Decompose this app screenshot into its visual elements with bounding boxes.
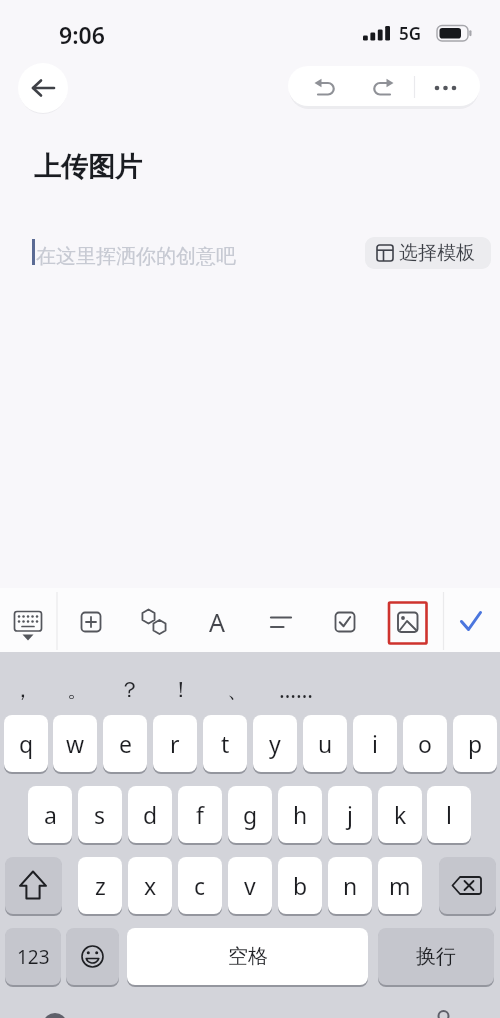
- button[interactable]: g: [228, 786, 272, 843]
- button[interactable]: n: [328, 857, 372, 914]
- button[interactable]: v: [228, 857, 272, 914]
- staticText: f: [196, 799, 204, 830]
- button[interactable]: c: [178, 857, 222, 914]
- staticText: ？: [119, 676, 141, 703]
- staticText: v: [244, 870, 256, 901]
- staticText: m: [389, 870, 411, 901]
- button[interactable]: j: [328, 786, 372, 843]
- button[interactable]: k: [378, 786, 422, 843]
- button[interactable]: [5, 857, 62, 914]
- staticText: ，: [12, 676, 34, 703]
- button[interactable]: t: [203, 715, 247, 772]
- button[interactable]: y: [253, 715, 297, 772]
- staticText: 5G: [399, 22, 422, 45]
- button[interactable]: [66, 928, 119, 985]
- button[interactable]: z: [78, 857, 122, 914]
- button[interactable]: [128, 596, 180, 646]
- button[interactable]: h: [278, 786, 322, 843]
- button[interactable]: b: [278, 857, 322, 914]
- staticText: 选择模板: [399, 241, 475, 265]
- staticText: ！: [170, 676, 192, 703]
- button[interactable]: 。: [51, 664, 105, 714]
- staticText: b: [293, 870, 308, 901]
- button[interactable]: [445, 596, 497, 646]
- button[interactable]: f: [178, 786, 222, 843]
- staticText: d: [143, 799, 158, 830]
- button[interactable]: [320, 596, 372, 646]
- staticText: 在这里挥洒你的创意吧: [36, 244, 236, 269]
- button[interactable]: [439, 857, 496, 914]
- staticText: t: [221, 728, 230, 759]
- staticText: j: [347, 799, 353, 830]
- button[interactable]: q: [4, 715, 48, 772]
- staticText: n: [343, 870, 358, 901]
- staticText: 、: [227, 676, 249, 703]
- button[interactable]: 选择模板: [365, 237, 491, 269]
- staticText: 。: [67, 676, 89, 703]
- button[interactable]: d: [128, 786, 172, 843]
- button[interactable]: [191, 596, 243, 646]
- button[interactable]: x: [128, 857, 172, 914]
- staticText: c: [194, 870, 206, 901]
- button[interactable]: ！: [154, 664, 208, 714]
- staticText: z: [95, 870, 106, 901]
- button[interactable]: [255, 596, 307, 646]
- button[interactable]: 123: [5, 928, 61, 985]
- button[interactable]: a: [28, 786, 72, 843]
- button[interactable]: p: [453, 715, 497, 772]
- button[interactable]: u: [303, 715, 347, 772]
- staticText: y: [269, 728, 281, 759]
- staticText: l: [446, 799, 452, 830]
- button[interactable]: r: [153, 715, 197, 772]
- staticText: 上传图片: [34, 150, 142, 184]
- button[interactable]: ，: [0, 664, 50, 714]
- button[interactable]: l: [427, 786, 471, 843]
- button[interactable]: [65, 596, 117, 646]
- button[interactable]: [18, 63, 68, 113]
- button[interactable]: [288, 66, 350, 106]
- staticText: A: [209, 605, 225, 639]
- staticText: w: [66, 728, 85, 759]
- button[interactable]: [350, 66, 414, 106]
- staticText: x: [144, 870, 157, 901]
- staticText: s: [94, 799, 106, 830]
- staticText: 换行: [416, 944, 456, 969]
- button[interactable]: [2, 596, 54, 646]
- staticText: i: [372, 728, 378, 759]
- button[interactable]: e: [103, 715, 147, 772]
- button[interactable]: m: [378, 857, 422, 914]
- staticText: h: [293, 799, 308, 830]
- button[interactable]: i: [353, 715, 397, 772]
- staticText: p: [468, 728, 483, 759]
- staticText: k: [394, 799, 407, 830]
- button[interactable]: 换行: [378, 928, 494, 985]
- staticText: r: [170, 728, 180, 759]
- button[interactable]: ？: [103, 664, 157, 714]
- staticText: 空格: [228, 944, 268, 969]
- button[interactable]: s: [78, 786, 122, 843]
- staticText: u: [318, 728, 333, 759]
- button[interactable]: [382, 596, 434, 646]
- button[interactable]: [414, 66, 480, 106]
- staticText: o: [418, 728, 432, 759]
- staticText: a: [44, 799, 57, 830]
- staticText: 9:06: [59, 19, 105, 50]
- staticText: q: [19, 728, 34, 759]
- staticText: e: [119, 728, 132, 759]
- staticText: 123: [17, 944, 50, 970]
- button[interactable]: o: [403, 715, 447, 772]
- button[interactable]: ……: [269, 664, 323, 714]
- staticText: g: [243, 799, 258, 830]
- staticText: ……: [279, 675, 314, 704]
- button[interactable]: 空格: [127, 928, 368, 985]
- button[interactable]: w: [53, 715, 97, 772]
- button[interactable]: 、: [211, 664, 265, 714]
